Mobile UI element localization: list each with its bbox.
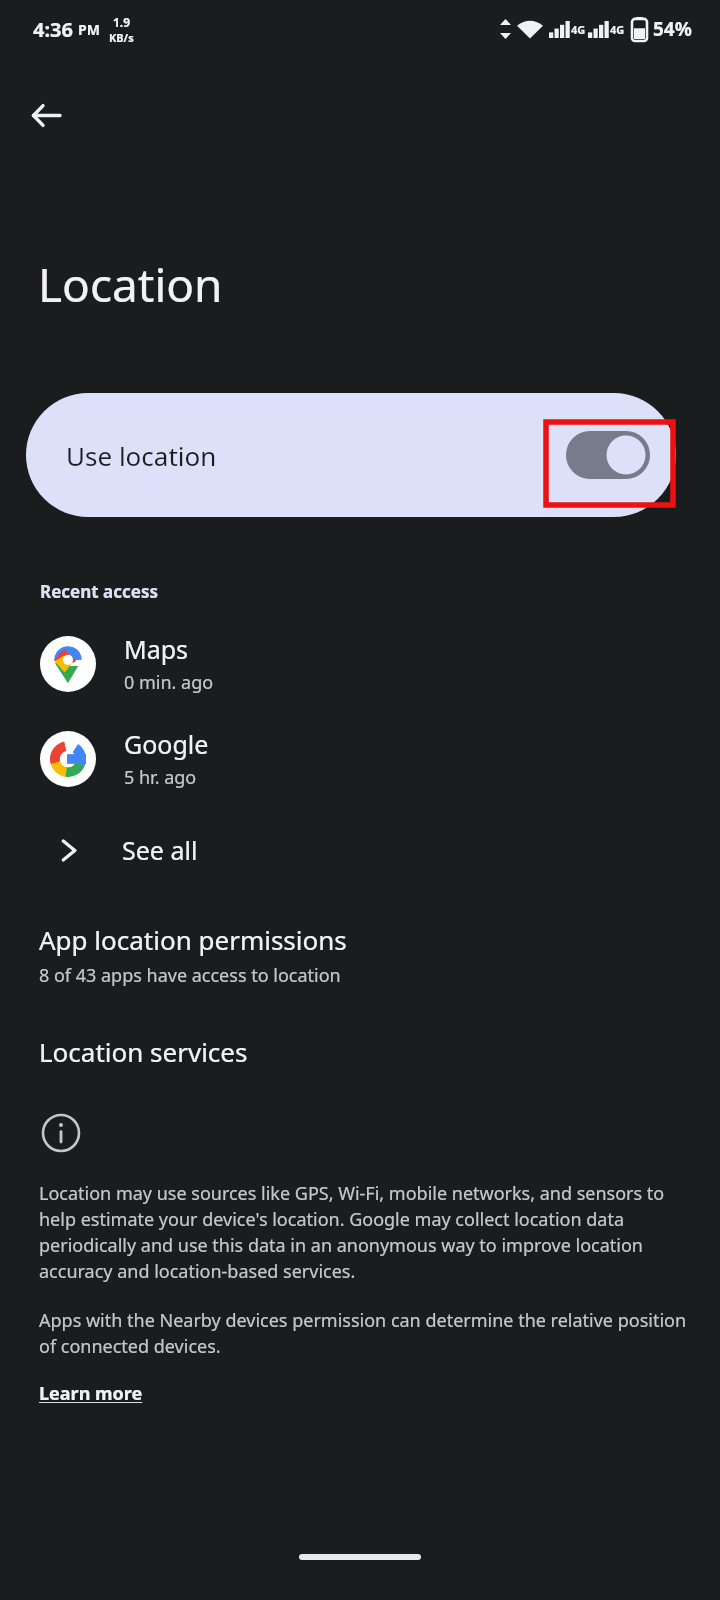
- button[interactable]: Use location: [26, 393, 676, 517]
- button[interactable]: Back: [17, 86, 75, 144]
- staticText: Location services: [39, 1034, 248, 1069]
- staticText: Use location: [66, 438, 217, 473]
- staticText: App location permissions: [39, 922, 347, 957]
- button[interactable]: App location permissions: [0, 920, 720, 994]
- staticText: Google: [124, 727, 209, 761]
- staticText: KB/s: [109, 30, 134, 45]
- staticText: PM: [78, 20, 100, 39]
- button[interactable]: Google: [0, 723, 720, 794]
- staticText: 4G: [610, 22, 625, 37]
- staticText: Apps with the Nearby devices permission …: [39, 1308, 694, 1359]
- staticText: Location: [38, 253, 223, 316]
- staticText: 5 hr. ago: [124, 765, 197, 790]
- button[interactable]: Use location toggle: [566, 431, 650, 479]
- staticText: 4G: [571, 22, 586, 37]
- other: Information: [41, 1113, 81, 1153]
- staticText: 54%: [653, 16, 692, 42]
- staticText: 4:36: [33, 16, 73, 43]
- staticText: See all: [122, 833, 198, 867]
- button[interactable]: See all: [0, 810, 720, 890]
- staticText: Recent access: [40, 580, 159, 603]
- staticText: Location may use sources like GPS, Wi-Fi…: [39, 1181, 694, 1284]
- button[interactable]: Learn more: [0, 1379, 153, 1410]
- button[interactable]: Maps: [0, 628, 720, 699]
- staticText: Learn more: [39, 1381, 143, 1406]
- staticText: 8 of 43 apps have access to location: [39, 963, 341, 988]
- staticText: 1.9: [113, 14, 131, 30]
- staticText: 0 min. ago: [124, 670, 214, 695]
- staticText: Maps: [124, 632, 189, 666]
